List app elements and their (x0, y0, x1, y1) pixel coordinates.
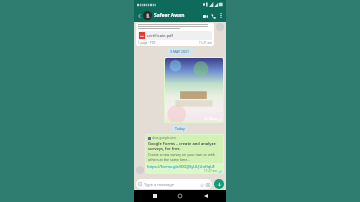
button[interactable]: Camera (205, 182, 210, 187)
staticText: Google Forms – create and analyze survey… (148, 141, 221, 151)
button[interactable]: certificate.pdf (138, 24, 212, 45)
staticText: 11:27 am (204, 169, 217, 173)
staticText: 3 MAY 2021 (170, 49, 190, 54)
button[interactable]: Recents (150, 191, 160, 201)
button[interactable]: Safeer Awan (154, 12, 185, 19)
button[interactable]: Scroll to bottom (214, 179, 224, 189)
button[interactable]: Back (201, 191, 211, 201)
button[interactable]: Type a message (138, 179, 210, 189)
button[interactable]: Today (175, 126, 185, 131)
staticText: 11:21 am (199, 41, 212, 45)
button[interactable]: Voice call (209, 12, 217, 20)
staticText: 11:14 am (204, 117, 217, 121)
staticText: 1 page · PDF (138, 41, 156, 45)
staticText: Create a new survey on your own or with … (148, 152, 221, 162)
staticText: docs.google.com (152, 136, 176, 140)
button[interactable]: Back (136, 12, 143, 19)
button[interactable]: Home (175, 191, 185, 201)
button[interactable]: More options (217, 12, 224, 19)
staticText: Type a message (144, 182, 175, 187)
staticText: https://forms.gle/8XQJXyULJUoHqL8 (147, 164, 215, 169)
button[interactable]: Profile photo (143, 11, 152, 20)
staticText: certificate.pdf (147, 33, 173, 38)
button[interactable]: docs.google.com (146, 135, 223, 173)
button[interactable]: Photo (165, 58, 223, 122)
staticText: Today (175, 126, 185, 131)
button[interactable]: Video call (201, 12, 209, 20)
button[interactable]: Attach (199, 182, 204, 187)
